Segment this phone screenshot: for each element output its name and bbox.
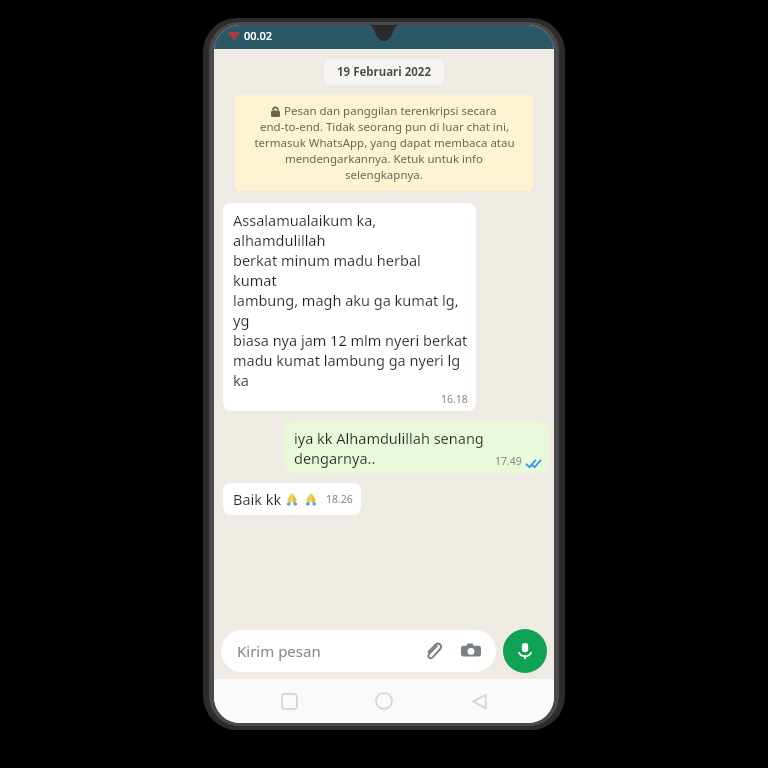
staticText: biasa nya jam 12 mlm nyeri berkat [233, 330, 468, 350]
button[interactable]: Voice message [503, 629, 547, 673]
button[interactable]: iya kk Alhamdulillah senang [284, 421, 549, 473]
button[interactable]: Baik kk [223, 483, 361, 515]
staticText: Assalamualaikum ka, alhamdulillah [233, 210, 468, 250]
button[interactable]: Recents [269, 681, 309, 721]
button[interactable]: Back [459, 681, 499, 721]
staticText: Kirim pesan [237, 641, 321, 661]
button[interactable]: Attach [420, 638, 446, 664]
staticText: iya kk Alhamdulillah senang [294, 428, 484, 448]
button[interactable]: Assalamualaikum ka, alhamdulillah [223, 203, 476, 411]
staticText: madu kumat lambung ga nyeri lg ka [233, 350, 468, 390]
button[interactable]: Pesan dan panggilan terenkripsi secara [234, 95, 534, 191]
staticText: 18.26 [326, 492, 353, 506]
staticText: end-to-end. Tidak seorang pun di luar ch… [260, 119, 509, 135]
button[interactable]: Kirim pesan [221, 630, 496, 672]
staticText: lambung, magh aku ga kumat lg, yg [233, 290, 468, 330]
staticText: 17.49 [495, 454, 522, 468]
button[interactable]: 19 Februari 2022 [324, 59, 444, 85]
staticText: 00.02 [244, 28, 273, 43]
staticText: berkat minum madu herbal kumat [233, 250, 468, 290]
button[interactable]: Camera [458, 638, 484, 664]
staticText: dengarnya.. [294, 448, 376, 468]
staticText: mendengarkannya. Ketuk untuk info seleng… [246, 151, 522, 183]
staticText: 19 Februari 2022 [337, 64, 431, 80]
button[interactable]: Home [364, 681, 404, 721]
staticText: termasuk WhatsApp, yang dapat membaca at… [254, 135, 515, 151]
staticText: 16.18 [441, 392, 468, 406]
staticText: Pesan dan panggilan terenkripsi secara [284, 103, 497, 119]
staticText: Baik kk [233, 489, 282, 509]
